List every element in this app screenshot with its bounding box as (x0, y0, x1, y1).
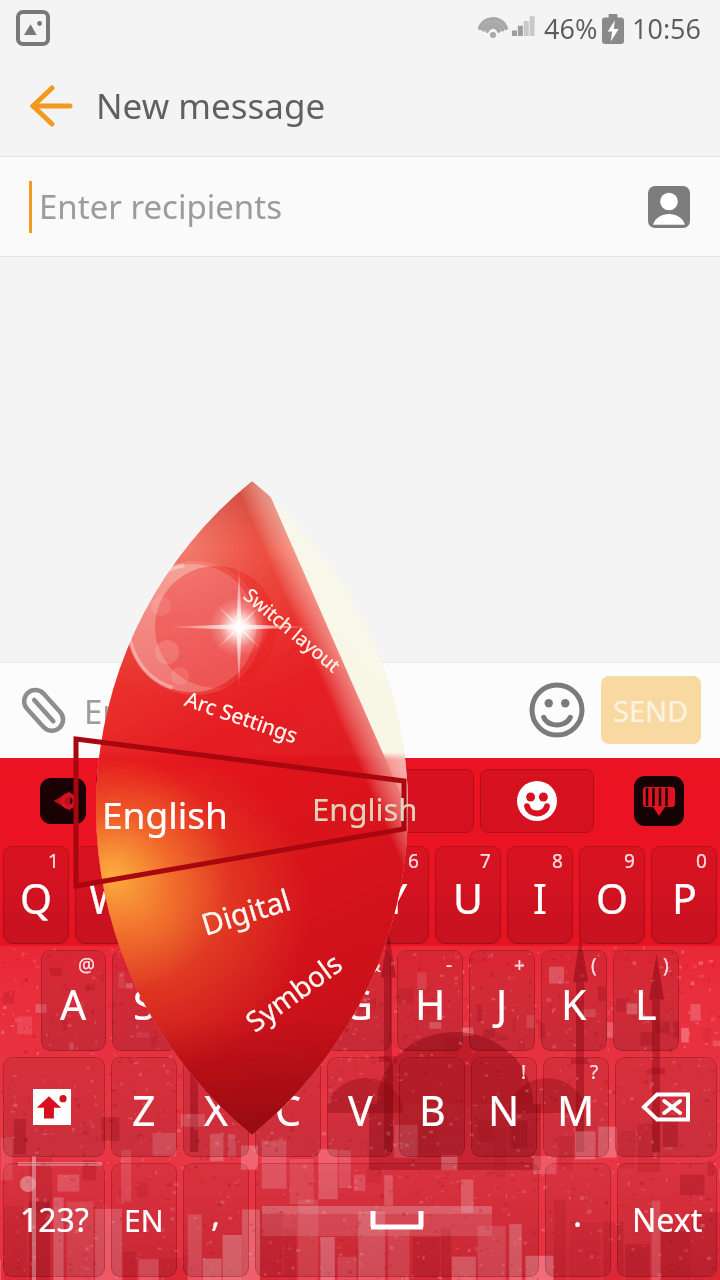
staticText: ! (521, 1059, 527, 1085)
staticText: Symbols (237, 944, 349, 1040)
button[interactable]: E (147, 846, 213, 944)
staticText: 10:56 (632, 10, 702, 47)
staticText: + (514, 952, 525, 978)
staticText: Enter recipients (39, 184, 282, 229)
button[interactable]: Z (111, 1057, 177, 1157)
button[interactable]: A (41, 950, 106, 1051)
button[interactable]: . (545, 1163, 611, 1277)
staticText: H (415, 976, 446, 1032)
button[interactable]: SEND (601, 676, 701, 744)
staticText: English (102, 789, 228, 839)
staticText: K (561, 976, 587, 1032)
staticText: O (596, 870, 629, 926)
button[interactable] (96, 769, 474, 833)
staticText: 3 (192, 848, 203, 874)
button[interactable]: English (15, 786, 315, 842)
staticText: U (453, 870, 483, 926)
button[interactable]: EN (111, 1163, 177, 1277)
button[interactable]: M (543, 1057, 609, 1157)
button[interactable]: Voice input (40, 778, 86, 824)
staticText: Next (632, 1198, 703, 1242)
button[interactable]: Switch layout (159, 512, 425, 748)
staticText: New message (96, 82, 326, 130)
staticText: . (573, 1191, 583, 1237)
button[interactable]: J (469, 950, 535, 1051)
button[interactable]: , (183, 1163, 249, 1277)
staticText: R (239, 870, 265, 926)
staticText: 6 (408, 848, 419, 874)
button[interactable]: O (579, 846, 645, 944)
staticText: 4 (264, 848, 275, 874)
button[interactable]: D (183, 950, 248, 1051)
staticText: Y (384, 870, 408, 926)
staticText: A (60, 976, 87, 1032)
staticText: 1 (48, 848, 59, 874)
staticText: Z (132, 1082, 156, 1138)
button[interactable]: English (310, 786, 420, 832)
button[interactable]: U (435, 846, 501, 944)
staticText: L (635, 976, 657, 1032)
staticText: 8 (552, 848, 563, 874)
staticText: 2 (120, 848, 131, 874)
button[interactable]: Attach (16, 682, 72, 738)
button[interactable]: T (291, 846, 357, 944)
button[interactable]: C (255, 1057, 321, 1157)
button[interactable]: Backspace (615, 1057, 717, 1157)
button[interactable]: Q (3, 846, 69, 944)
button[interactable]: N (471, 1057, 537, 1157)
button[interactable]: G (325, 950, 391, 1051)
staticText: G (343, 976, 373, 1032)
staticText: Q (20, 870, 53, 926)
staticText: ) (663, 952, 669, 978)
button[interactable]: 123? (3, 1163, 105, 1277)
staticText: 123? (20, 1198, 89, 1242)
staticText: English (312, 788, 418, 830)
staticText: I (533, 870, 547, 926)
staticText: M (557, 1082, 595, 1138)
staticText: D (201, 976, 231, 1032)
staticText: # (154, 952, 167, 978)
button[interactable]: P (651, 846, 717, 944)
staticText: F (276, 976, 298, 1032)
button[interactable]: Y (363, 846, 429, 944)
staticText: P (672, 870, 697, 926)
button[interactable]: V (327, 1057, 393, 1157)
button[interactable]: Shift (3, 1057, 105, 1157)
button[interactable]: X (183, 1057, 249, 1157)
staticText: V (348, 1082, 373, 1138)
staticText: 0 (696, 848, 707, 874)
button[interactable]: I (507, 846, 573, 944)
button[interactable]: F (254, 950, 319, 1051)
button[interactable]: H (397, 950, 463, 1051)
button[interactable]: Symbols (155, 881, 431, 1103)
staticText: C (275, 1082, 301, 1138)
button[interactable]: Contacts (648, 186, 690, 228)
staticText: - (446, 952, 453, 978)
button[interactable]: Space (255, 1163, 539, 1277)
button[interactable]: Next (617, 1163, 717, 1277)
button[interactable]: S (112, 950, 177, 1051)
staticText: 46% (544, 10, 598, 47)
button[interactable]: Back (26, 81, 76, 131)
button[interactable]: R (219, 846, 285, 944)
staticText: W (89, 870, 128, 926)
staticText: ? (590, 1059, 599, 1085)
button[interactable]: Theme (634, 776, 684, 826)
staticText: 7 (480, 848, 491, 874)
button[interactable]: Emoji (528, 681, 586, 739)
button[interactable]: Emoji (480, 769, 594, 833)
staticText: X (204, 1082, 229, 1138)
button[interactable]: Digital (94, 840, 398, 982)
staticText: , (211, 1191, 221, 1237)
button[interactable]: L (613, 950, 679, 1051)
button[interactable]: Arc Settings (91, 642, 393, 792)
staticText: N (488, 1082, 520, 1138)
staticText: ( (591, 952, 597, 978)
button[interactable]: K (541, 950, 607, 1051)
button[interactable]: B (399, 1057, 465, 1157)
button[interactable]: W (75, 846, 141, 944)
